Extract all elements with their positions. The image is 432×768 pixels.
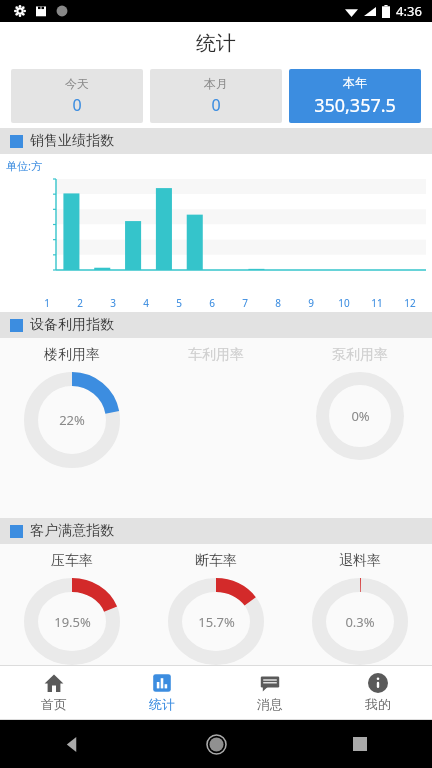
staticText: 0 — [211, 94, 221, 116]
button[interactable]: 今天 — [11, 69, 143, 123]
button[interactable]: 首页 — [0, 666, 108, 719]
staticText: 消息 — [257, 696, 283, 712]
staticText: 今天 — [65, 76, 89, 91]
other: 首页 — [44, 673, 64, 693]
staticText: 0% — [351, 407, 370, 425]
staticText: 2 — [77, 296, 83, 310]
button[interactable]: 0% — [316, 372, 404, 460]
staticText: 本月 — [204, 76, 228, 91]
staticText: 设备利用指数 — [30, 316, 114, 334]
button[interactable]: Home — [207, 735, 226, 754]
staticText: 统计 — [149, 696, 175, 712]
staticText: 10 — [338, 296, 350, 310]
staticText: 7 — [242, 296, 248, 310]
staticText: 断车率 — [195, 552, 237, 570]
staticText: 销售业绩指数 — [30, 132, 114, 150]
staticText: 退料率 — [339, 552, 381, 570]
staticText: 0 — [72, 94, 82, 116]
button[interactable]: 19.5% — [24, 578, 120, 665]
button[interactable]: Back — [65, 737, 80, 752]
staticText: 5 — [176, 296, 182, 310]
other: 消息 — [260, 673, 280, 693]
staticText: 单位:方 — [6, 158, 42, 173]
button[interactable]: 本月 — [150, 69, 282, 123]
button[interactable]: 本年 — [289, 69, 421, 123]
staticText: 泵利用率 — [332, 346, 388, 364]
other: 统计 — [152, 673, 172, 693]
staticText: 首页 — [41, 696, 67, 712]
staticText: 11 — [371, 296, 383, 310]
staticText: 8 — [275, 296, 281, 310]
staticText: 19.5% — [54, 613, 91, 631]
staticText: 350,357.5 — [314, 93, 396, 118]
button[interactable]: 22% — [24, 372, 120, 468]
button[interactable]: 0.3% — [312, 578, 408, 665]
button[interactable]: 15.7% — [168, 578, 264, 665]
button[interactable]: 统计 — [108, 666, 216, 719]
staticText: 4 — [143, 296, 149, 310]
staticText: 1 — [44, 296, 50, 310]
button[interactable]: 消息 — [216, 666, 324, 719]
staticText: 统计 — [196, 31, 236, 56]
staticText: 0.3% — [345, 613, 375, 631]
staticText: 3 — [110, 296, 116, 310]
staticText: 我的 — [365, 696, 391, 712]
staticText: 车利用率 — [188, 346, 244, 364]
staticText: 22% — [59, 411, 85, 429]
staticText: 楼利用率 — [44, 346, 100, 364]
staticText: 6 — [209, 296, 215, 310]
staticText: 压车率 — [51, 552, 93, 570]
staticText: 12 — [404, 296, 416, 310]
staticText: 15.7% — [198, 613, 235, 631]
button[interactable]: 我的 — [324, 666, 432, 719]
staticText: 9 — [308, 296, 314, 310]
staticText: 本年 — [343, 75, 367, 90]
other: 我的 — [368, 673, 388, 693]
staticText: 4:36 — [396, 2, 422, 20]
staticText: 客户满意指数 — [30, 522, 114, 540]
